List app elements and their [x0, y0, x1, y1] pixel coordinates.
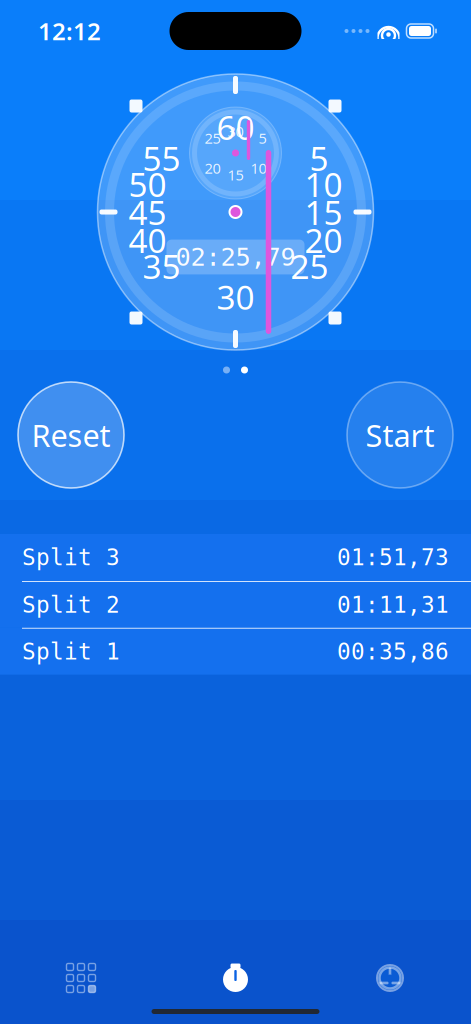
- staticText: Split 3: [22, 545, 120, 570]
- button[interactable]: Split 2: [0, 581, 471, 628]
- staticText: 50: [128, 162, 166, 206]
- button[interactable]: Start: [347, 382, 453, 488]
- staticText: 02:25,79: [175, 243, 295, 271]
- staticText: 20: [304, 218, 342, 262]
- staticText: 30: [216, 275, 254, 319]
- staticText: 25: [204, 128, 220, 148]
- staticText: 00:35,86: [337, 639, 449, 664]
- staticText: 55: [142, 136, 180, 180]
- staticText: 40: [128, 218, 166, 262]
- staticText: 25: [290, 244, 328, 288]
- staticText: 5: [309, 136, 328, 180]
- staticText: Reset: [31, 415, 110, 455]
- staticText: 15: [304, 190, 342, 234]
- staticText: 30: [227, 121, 243, 141]
- staticText: 01:51,73: [337, 545, 449, 570]
- staticText: Start: [365, 415, 434, 455]
- button[interactable]: Timers: [46, 954, 116, 1002]
- button[interactable]: Stopwatch: [200, 954, 270, 1002]
- staticText: 60: [216, 105, 254, 149]
- button[interactable]: Split 3: [0, 534, 471, 581]
- staticText: 12:12: [38, 15, 101, 47]
- staticText: 45: [128, 190, 166, 234]
- staticText: 35: [142, 244, 180, 288]
- staticText: 5: [258, 128, 266, 148]
- staticText: 15: [227, 165, 243, 184]
- staticText: Split 2: [22, 592, 120, 618]
- staticText: Split 1: [22, 639, 120, 664]
- staticText: 01:11,31: [337, 592, 449, 618]
- button[interactable]: Settings: [355, 954, 425, 1002]
- staticText: 10: [250, 158, 266, 178]
- staticText: 10: [304, 162, 342, 206]
- button[interactable]: Split 1: [0, 628, 471, 675]
- button[interactable]: Reset: [18, 382, 124, 488]
- staticText: 20: [204, 158, 220, 178]
